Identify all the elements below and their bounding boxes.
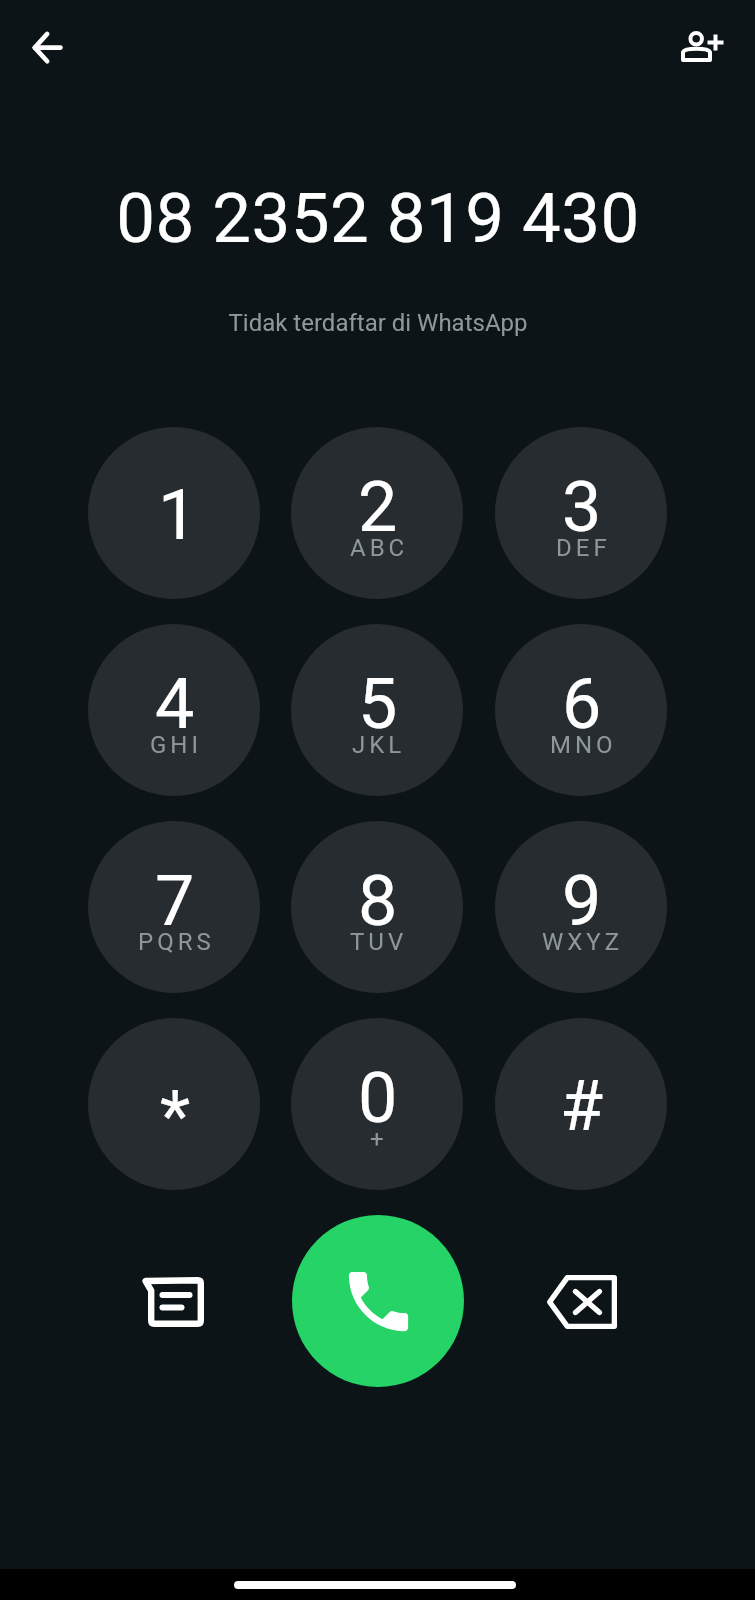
button[interactable]: 5 — [291, 624, 463, 796]
staticText: PQRS — [138, 928, 215, 956]
button[interactable]: 4 — [88, 624, 260, 796]
button[interactable]: Backspace — [528, 1248, 636, 1356]
button[interactable]: * — [88, 1018, 260, 1190]
staticText: 9 — [562, 860, 602, 942]
staticText: 3 — [562, 466, 602, 548]
staticText: Tidak terdaftar di WhatsApp — [228, 309, 528, 337]
staticText: 7 — [155, 860, 195, 942]
button[interactable]: 7 — [88, 821, 260, 993]
staticText: 5 — [358, 663, 398, 745]
staticText: WXYZ — [542, 928, 624, 956]
staticText: + — [370, 1125, 388, 1153]
button[interactable]: Call — [292, 1215, 464, 1387]
staticText: 4 — [155, 663, 195, 745]
staticText: MNO — [550, 731, 617, 759]
button[interactable]: Send message — [118, 1248, 226, 1356]
staticText: GHI — [150, 731, 202, 759]
button[interactable]: 9 — [495, 821, 667, 993]
staticText: 08 2352 819 430 — [116, 178, 640, 259]
staticText: 0 — [358, 1057, 398, 1139]
button[interactable]: 2 — [291, 427, 463, 599]
staticText: * — [160, 1075, 191, 1157]
button[interactable]: # — [495, 1018, 667, 1190]
button[interactable]: 8 — [291, 821, 463, 993]
staticText: JKL — [352, 731, 406, 759]
staticText: # — [560, 1065, 604, 1147]
staticText: 6 — [562, 663, 602, 745]
staticText: 1 — [158, 474, 198, 556]
button[interactable]: 0 — [291, 1018, 463, 1190]
button[interactable]: 3 — [495, 427, 667, 599]
staticText: 8 — [358, 860, 398, 942]
button[interactable]: 1 — [88, 427, 260, 599]
button[interactable]: Add contact — [670, 14, 734, 78]
staticText: ABC — [350, 534, 409, 562]
staticText: 2 — [358, 466, 398, 548]
staticText: DEF — [556, 534, 611, 562]
button[interactable]: Back — [15, 15, 79, 79]
button[interactable]: 6 — [495, 624, 667, 796]
staticText: TUV — [350, 928, 408, 956]
